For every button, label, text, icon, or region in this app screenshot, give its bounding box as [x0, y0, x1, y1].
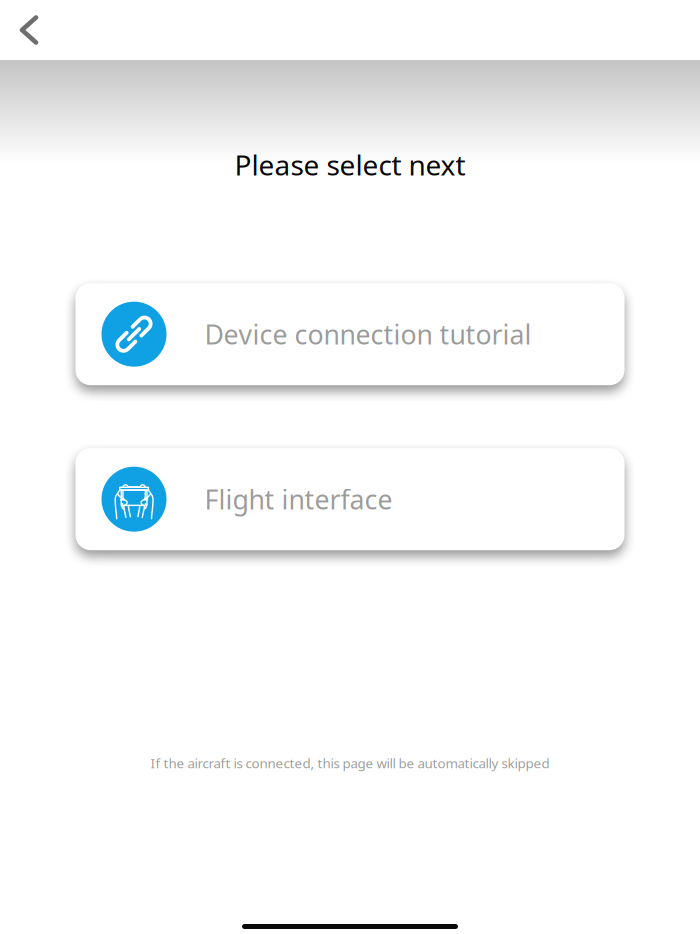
staticText: Flight interface: [204, 481, 392, 517]
button[interactable]: Back: [0, 0, 58, 60]
button[interactable]: Device connection tutorial: [75, 283, 624, 385]
button[interactable]: Flight interface: [75, 448, 624, 550]
staticText: If the aircraft is connected, this page …: [150, 754, 549, 772]
staticText: Please select next: [234, 146, 465, 183]
staticText: Device connection tutorial: [204, 316, 531, 352]
